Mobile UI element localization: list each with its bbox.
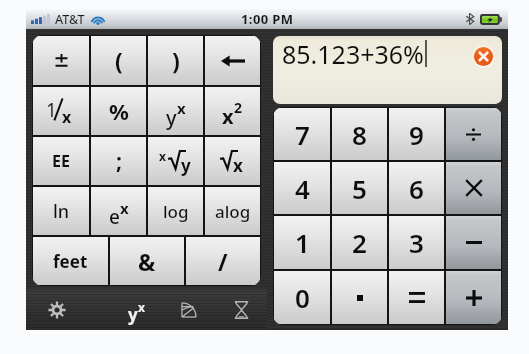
button[interactable] <box>446 271 501 324</box>
staticText: x <box>120 198 129 218</box>
staticText: log <box>163 200 189 223</box>
button[interactable] <box>389 271 444 324</box>
staticText: ln <box>53 199 70 224</box>
staticText: 8 <box>352 117 367 152</box>
staticText: x <box>138 299 145 315</box>
button[interactable]: e <box>91 187 146 235</box>
button[interactable]: alog <box>205 187 260 235</box>
button[interactable]: x <box>148 137 203 185</box>
button[interactable]: / <box>186 237 260 285</box>
staticText: 1:00 PM <box>241 10 294 28</box>
staticText: 6 <box>409 171 424 206</box>
button[interactable]: % <box>91 87 146 135</box>
staticText: alog <box>215 200 251 223</box>
button[interactable]: History <box>207 290 267 330</box>
button[interactable]: 7 <box>274 108 330 160</box>
staticText: 1 <box>46 97 57 123</box>
button[interactable]: & <box>110 237 184 285</box>
button[interactable] <box>205 36 260 85</box>
staticText: x <box>233 154 243 177</box>
button[interactable]: log <box>148 187 203 235</box>
staticText: ; <box>116 147 122 176</box>
button[interactable]: ) <box>148 36 203 85</box>
staticText: % <box>109 96 129 126</box>
button[interactable]: feet <box>33 237 108 285</box>
button[interactable]: y <box>148 87 203 135</box>
button[interactable] <box>332 271 387 324</box>
button[interactable] <box>446 162 501 214</box>
staticText: 3 <box>409 225 424 260</box>
button[interactable]: Settings <box>26 290 87 330</box>
staticText: x <box>177 98 186 118</box>
staticText: 85.123+36% <box>282 37 424 71</box>
staticText: AT&T <box>55 11 85 28</box>
staticText: 4 <box>295 171 310 206</box>
staticText: y <box>181 154 191 177</box>
button[interactable]: 9 <box>389 108 444 160</box>
button[interactable] <box>446 108 501 160</box>
staticText: 2 <box>352 225 367 260</box>
button[interactable]: ( <box>91 36 146 85</box>
staticText: feet <box>53 250 88 273</box>
staticText: ( <box>115 45 123 76</box>
button[interactable]: 0 <box>274 271 330 324</box>
staticText: x <box>222 103 234 130</box>
staticText: 5 <box>352 171 367 206</box>
staticText: x <box>159 148 166 164</box>
button[interactable]: x <box>205 87 260 135</box>
button[interactable]: EE <box>33 137 89 185</box>
staticText: & <box>138 246 156 277</box>
button[interactable]: 1 <box>274 216 330 269</box>
button[interactable] <box>446 216 501 269</box>
staticText: 2 <box>234 98 243 117</box>
staticText: ) <box>172 45 180 76</box>
staticText: 1 <box>295 225 310 260</box>
staticText: EE <box>52 150 70 172</box>
button[interactable]: Geometry <box>147 290 207 330</box>
button[interactable]: y <box>87 290 147 330</box>
button[interactable]: x <box>205 137 260 185</box>
staticText: y <box>166 104 177 131</box>
button[interactable]: 8 <box>332 108 387 160</box>
button[interactable]: ; <box>91 137 146 185</box>
button[interactable]: 6 <box>389 162 444 214</box>
button[interactable]: 5 <box>332 162 387 214</box>
staticText: x <box>62 106 72 128</box>
button[interactable]: Clear <box>472 45 495 68</box>
button[interactable]: 3 <box>389 216 444 269</box>
staticText: / <box>218 246 228 277</box>
staticText: 9 <box>409 117 424 152</box>
button[interactable]: 2 <box>332 216 387 269</box>
staticText: y <box>128 303 138 326</box>
staticText: 7 <box>295 117 310 152</box>
button[interactable]: 4 <box>274 162 330 214</box>
button[interactable] <box>33 36 89 85</box>
button[interactable]: 1 <box>33 87 89 135</box>
button[interactable]: ln <box>33 187 89 235</box>
staticText: e <box>109 204 120 230</box>
staticText: 0 <box>295 280 310 315</box>
